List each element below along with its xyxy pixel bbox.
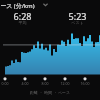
staticText: ベスト bbox=[63, 20, 92, 26]
staticText: 16:00 bbox=[76, 81, 94, 86]
staticText: ペース (分/km) bbox=[0, 2, 35, 10]
button[interactable]: Expand metric selector bbox=[41, 0, 50, 9]
staticText: 4:00 bbox=[16, 81, 34, 86]
staticText: 8:00 bbox=[36, 81, 54, 86]
button[interactable]: 5:23 bbox=[63, 10, 92, 27]
staticText: 平均 bbox=[8, 20, 37, 26]
button[interactable]: ペース (分/km) bbox=[0, 1, 39, 11]
button[interactable]: 6:28 bbox=[8, 10, 37, 27]
staticText: 0:00 bbox=[0, 81, 14, 86]
staticText: 5:23 bbox=[63, 10, 92, 27]
button[interactable]: 距離 ・ 時間 ・ ペース bbox=[28, 90, 72, 98]
staticText: 12:00 bbox=[56, 81, 74, 86]
staticText: 6:28 bbox=[8, 10, 37, 27]
staticText: 距離 ・ 時間 ・ ペース bbox=[28, 90, 72, 98]
